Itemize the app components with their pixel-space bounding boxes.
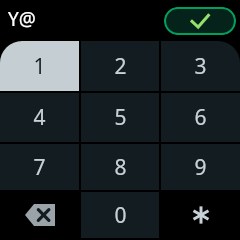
staticText: 8 xyxy=(114,153,127,182)
button[interactable]: 7 xyxy=(0,144,79,190)
button[interactable]: 3 xyxy=(161,41,240,91)
button[interactable]: Confirm xyxy=(164,7,236,35)
button[interactable]: 0 xyxy=(81,192,159,238)
staticText: 1 xyxy=(33,52,46,81)
staticText: 4 xyxy=(33,103,46,132)
staticText: 9 xyxy=(194,153,207,182)
staticText: 0 xyxy=(114,201,127,230)
staticText: Y@ xyxy=(8,6,36,32)
button[interactable]: 6 xyxy=(161,93,240,142)
button[interactable]: 2 xyxy=(81,41,159,91)
button[interactable]: Backspace xyxy=(0,192,79,238)
staticText: 3 xyxy=(194,52,207,81)
button[interactable] xyxy=(161,192,240,238)
button[interactable]: 5 xyxy=(81,93,159,142)
staticText: 5 xyxy=(114,103,127,132)
button[interactable]: 1 xyxy=(0,41,79,91)
staticText: 7 xyxy=(33,153,46,182)
button[interactable]: 4 xyxy=(0,93,79,142)
staticText: 6 xyxy=(194,103,207,132)
staticText: 2 xyxy=(114,52,127,81)
button[interactable]: 9 xyxy=(161,144,240,190)
button[interactable]: 8 xyxy=(81,144,159,190)
